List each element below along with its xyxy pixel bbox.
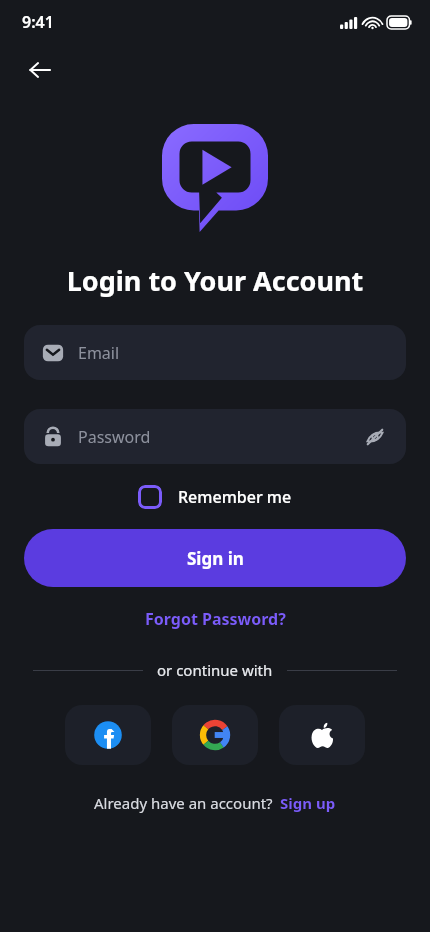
staticText: Sign up (280, 793, 336, 813)
staticText: Sign in (187, 547, 244, 570)
staticText: Email (78, 342, 388, 364)
staticText: Login to Your Account (0, 262, 430, 299)
button[interactable]: Sign in with Facebook (65, 705, 151, 765)
button[interactable]: Sign in with Apple (279, 705, 365, 765)
button[interactable]: Back (18, 48, 62, 92)
button[interactable]: Password (24, 409, 406, 464)
button[interactable]: Sign in with Google (172, 705, 258, 765)
staticText: Remember me (178, 486, 292, 508)
staticText: or continue with (157, 660, 273, 680)
button[interactable]: Show password (362, 424, 388, 450)
button[interactable]: Remember me (138, 485, 292, 509)
staticText: Already have an account? (94, 793, 273, 813)
button[interactable]: Forgot Password? (0, 608, 430, 630)
button[interactable]: Email (24, 325, 406, 380)
button[interactable]: Sign up (280, 793, 336, 813)
staticText: Forgot Password? (145, 608, 286, 630)
staticText: 9:41 (22, 11, 54, 33)
staticText: Password (78, 426, 362, 448)
button[interactable]: Sign in (24, 529, 406, 587)
